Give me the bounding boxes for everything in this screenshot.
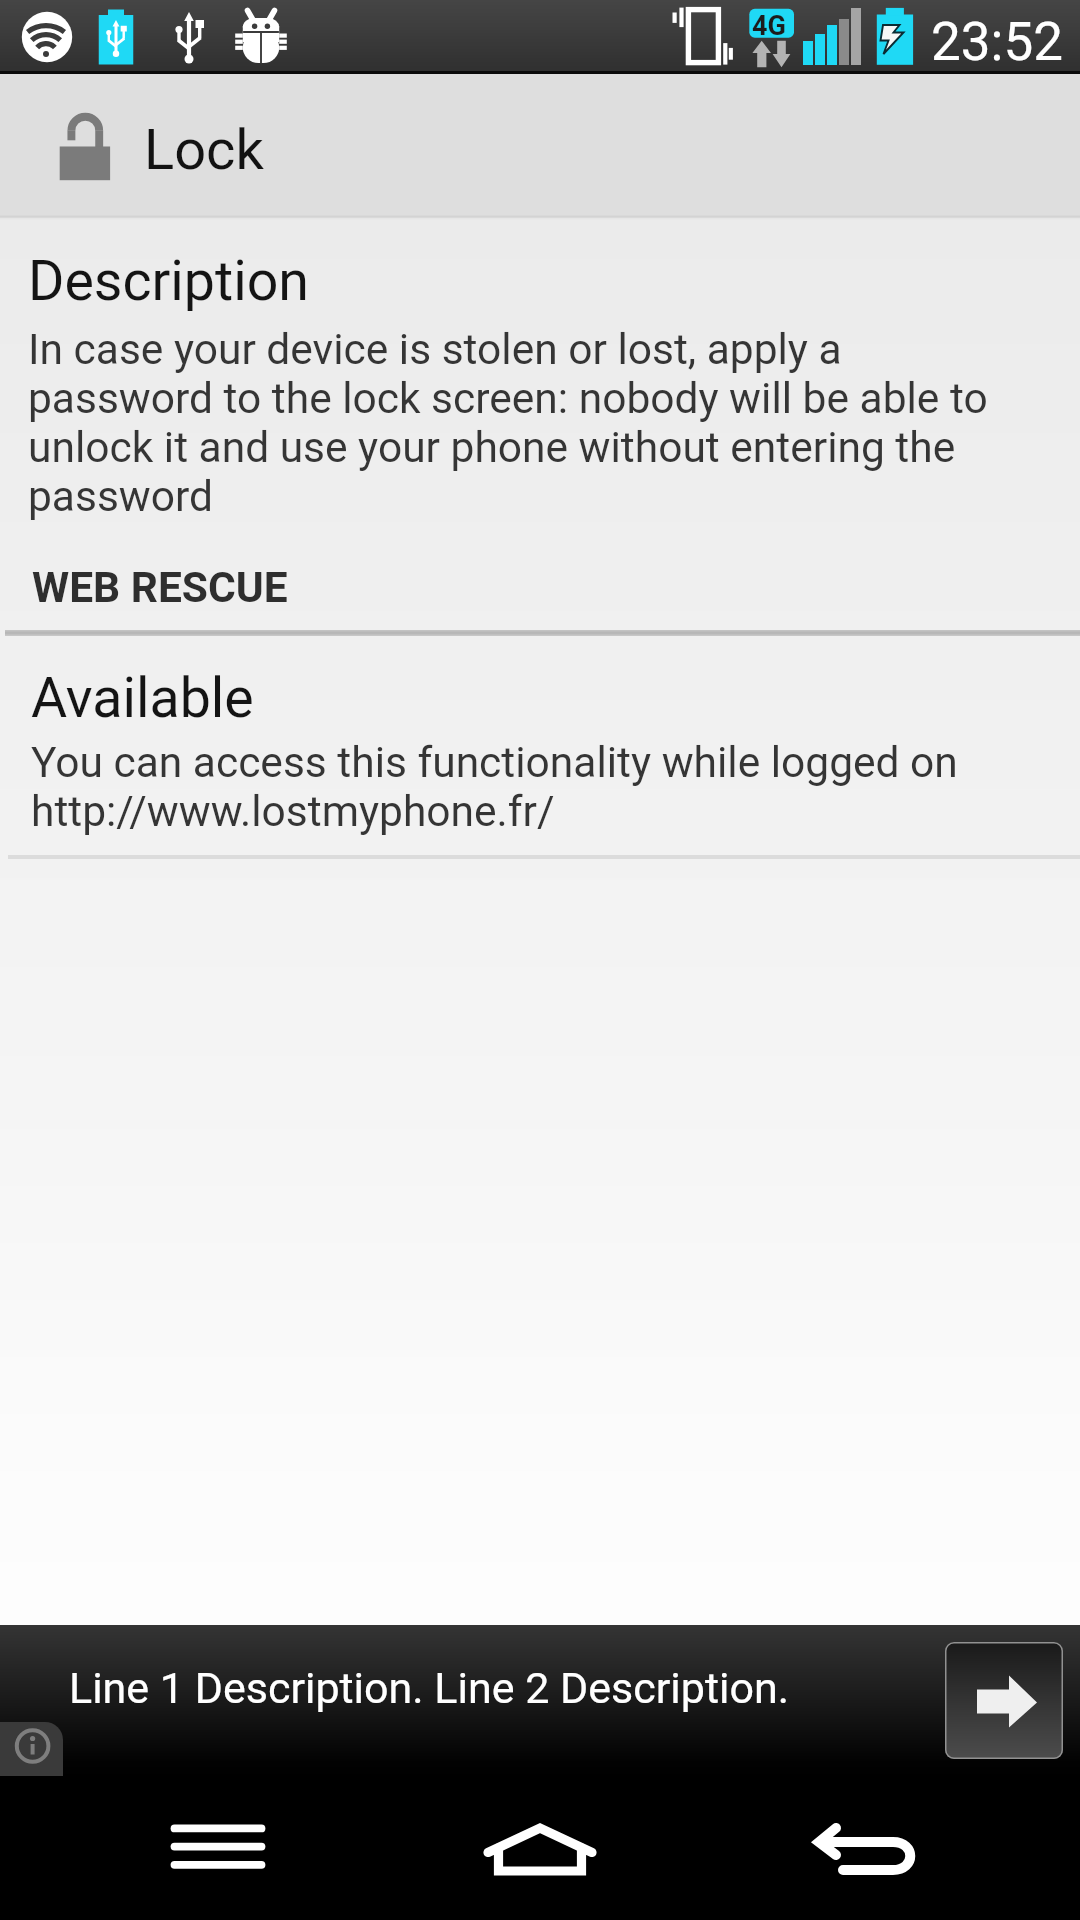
staticText: In case your device is stolen or lost, a…: [28, 326, 1028, 522]
staticText: You can access this functionality while …: [31, 739, 1011, 837]
staticText: Line 1 Description. Line 2 Description.: [69, 1663, 790, 1713]
button[interactable]: Description: [0, 222, 1080, 540]
button[interactable]: Menu: [126, 1778, 310, 1916]
button[interactable]: Line 1 Description. Line 2 Description.: [0, 1625, 1080, 1778]
button[interactable]: Back: [773, 1778, 957, 1920]
button[interactable]: Open advertisement: [945, 1642, 1063, 1759]
staticText: Lock: [144, 117, 264, 183]
button[interactable]: Home: [448, 1778, 632, 1920]
staticText: Description: [28, 249, 309, 314]
button[interactable]: Lock: [0, 74, 1080, 220]
staticText: Available: [31, 666, 254, 731]
staticText: WEB RESCUE: [32, 563, 288, 613]
button[interactable]: Ad information: [0, 1722, 63, 1776]
button[interactable]: Available: [0, 650, 1080, 854]
staticText: 4G: [752, 10, 786, 42]
staticText: 23:52: [931, 11, 1063, 73]
